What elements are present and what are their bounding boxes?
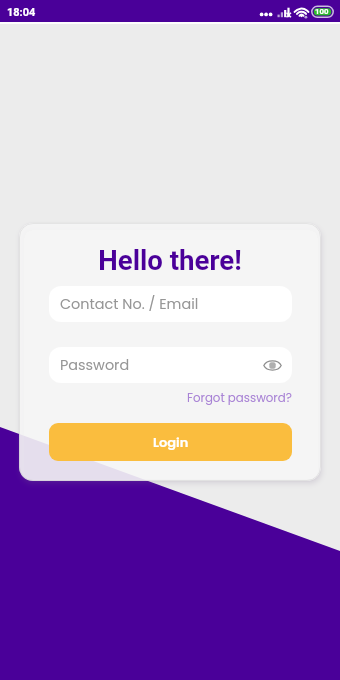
staticText: Contact No. / Email xyxy=(60,294,199,314)
button[interactable]: Forgot password? xyxy=(185,388,294,409)
staticText: Login xyxy=(153,433,189,451)
staticText: 18:04 xyxy=(7,6,36,19)
button[interactable]: Login xyxy=(49,423,292,461)
staticText: Forgot password? xyxy=(187,390,292,407)
button[interactable]: Contact No. / Email xyxy=(49,286,292,322)
staticText: Password xyxy=(60,355,130,375)
other: Show password xyxy=(263,359,282,372)
button[interactable]: Password xyxy=(49,347,292,383)
staticText: 100 xyxy=(315,7,329,16)
staticText: Hello there! xyxy=(19,244,321,276)
